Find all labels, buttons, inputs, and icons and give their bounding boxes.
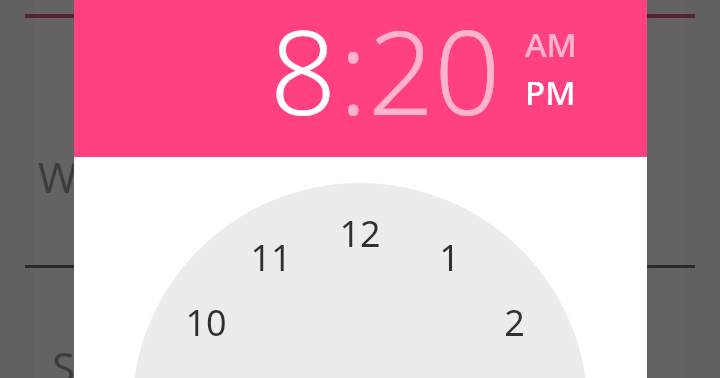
button[interactable]: PM	[525, 70, 576, 115]
button[interactable]: 1	[419, 233, 479, 281]
staticText: W	[38, 148, 78, 205]
staticText: :	[339, 0, 368, 148]
button[interactable]: 12	[330, 209, 390, 257]
staticText: 20	[368, 0, 501, 148]
staticText: 2	[504, 298, 525, 346]
staticText: S	[52, 338, 76, 378]
staticText: 1	[439, 233, 460, 281]
staticText: 12	[339, 209, 381, 257]
staticText: 10	[185, 298, 227, 346]
button[interactable]: 20	[368, 0, 501, 148]
staticText: AM	[525, 22, 577, 67]
button[interactable]: Clock face, select hour	[74, 157, 647, 378]
button[interactable]: 10	[176, 298, 236, 346]
button[interactable]: 8	[270, 0, 337, 148]
staticText: 8	[270, 0, 337, 148]
staticText: PM	[525, 70, 576, 115]
button[interactable]: 2	[484, 298, 544, 346]
button[interactable]: AM	[525, 22, 577, 67]
staticText: 11	[250, 233, 292, 281]
button[interactable]: 11	[241, 233, 301, 281]
